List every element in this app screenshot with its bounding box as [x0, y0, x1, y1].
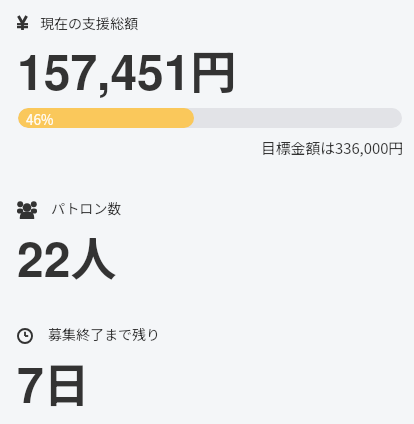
staticText: 募集終了まで残り: [48, 324, 160, 344]
other: Time remaining: [17, 328, 33, 344]
other: Yen: [17, 16, 28, 30]
staticText: 157,451円: [17, 36, 237, 105]
staticText: 46%: [26, 109, 54, 128]
button[interactable]: Yen: [0, 6, 414, 156]
staticText: 目標金額は336,000円: [261, 137, 404, 158]
staticText: 7日: [17, 349, 90, 418]
staticText: 現在の支援総額: [40, 13, 138, 33]
other: Patrons: [17, 201, 37, 219]
staticText: 22人: [17, 223, 117, 292]
staticText: パトロン数: [51, 198, 122, 218]
button[interactable]: Patrons: [0, 190, 414, 290]
button[interactable]: Time remaining: [0, 316, 414, 416]
